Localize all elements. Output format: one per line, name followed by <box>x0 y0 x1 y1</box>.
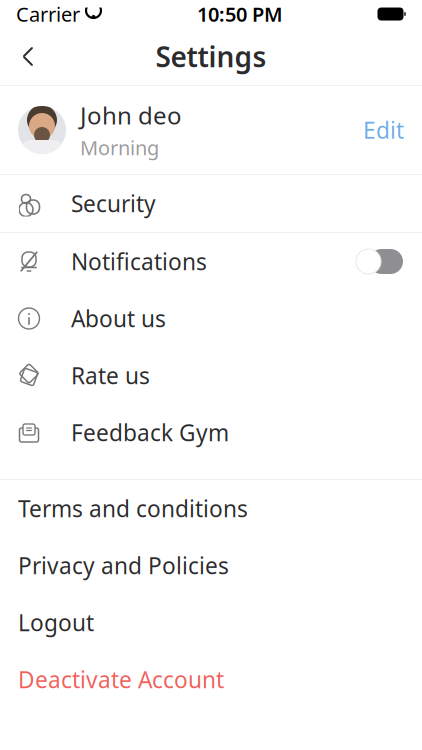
staticText: Morning <box>80 134 159 161</box>
staticText: 10:50 PM <box>197 1 283 27</box>
staticText: Edit <box>363 115 404 145</box>
staticText: Rate us <box>71 360 150 390</box>
button[interactable]: Logout <box>0 594 422 651</box>
button[interactable]: Rate us <box>0 347 422 404</box>
staticText: Settings <box>155 38 266 75</box>
button[interactable]: Feedback Gym <box>0 404 422 461</box>
button[interactable]: Deactivate Account <box>0 651 422 708</box>
button[interactable]: About us <box>0 290 422 347</box>
staticText: Feedback Gym <box>71 417 229 447</box>
button[interactable]: Privacy and Policies <box>0 537 422 594</box>
staticText: Privacy and Policies <box>18 550 229 580</box>
button[interactable]: Notifications <box>0 233 422 290</box>
staticText: Logout <box>18 607 94 637</box>
button[interactable]: John deo <box>0 86 422 174</box>
staticText: Carrier <box>16 1 80 27</box>
staticText: Notifications <box>71 246 207 276</box>
staticText: Security <box>71 188 156 218</box>
staticText: Terms and conditions <box>18 493 248 523</box>
button[interactable]: Terms and conditions <box>0 480 422 537</box>
button[interactable]: Security <box>0 175 422 232</box>
staticText: John deo <box>80 99 182 131</box>
button[interactable]: Back <box>6 34 50 78</box>
staticText: About us <box>71 303 166 333</box>
staticText: Deactivate Account <box>18 664 224 694</box>
